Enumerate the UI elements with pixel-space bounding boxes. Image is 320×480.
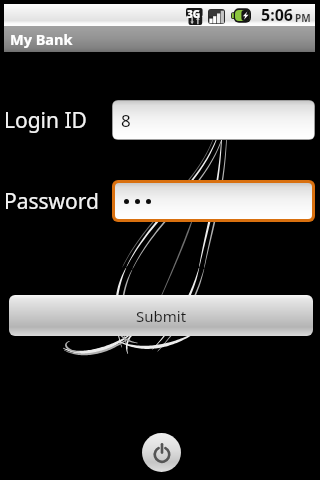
staticText: My Bank [10, 29, 73, 49]
staticText: Password [4, 187, 99, 215]
staticText: PM [295, 11, 311, 25]
staticText: Login ID [4, 106, 87, 134]
button[interactable]: Power [142, 433, 181, 472]
staticText: 3G [187, 7, 201, 21]
staticText: Submit [136, 306, 187, 326]
button[interactable] [115, 183, 312, 219]
button[interactable]: 8 [113, 101, 314, 139]
button[interactable]: Submit [9, 295, 313, 336]
staticText: 8 [121, 109, 131, 132]
staticText: 5:06 [261, 4, 293, 26]
